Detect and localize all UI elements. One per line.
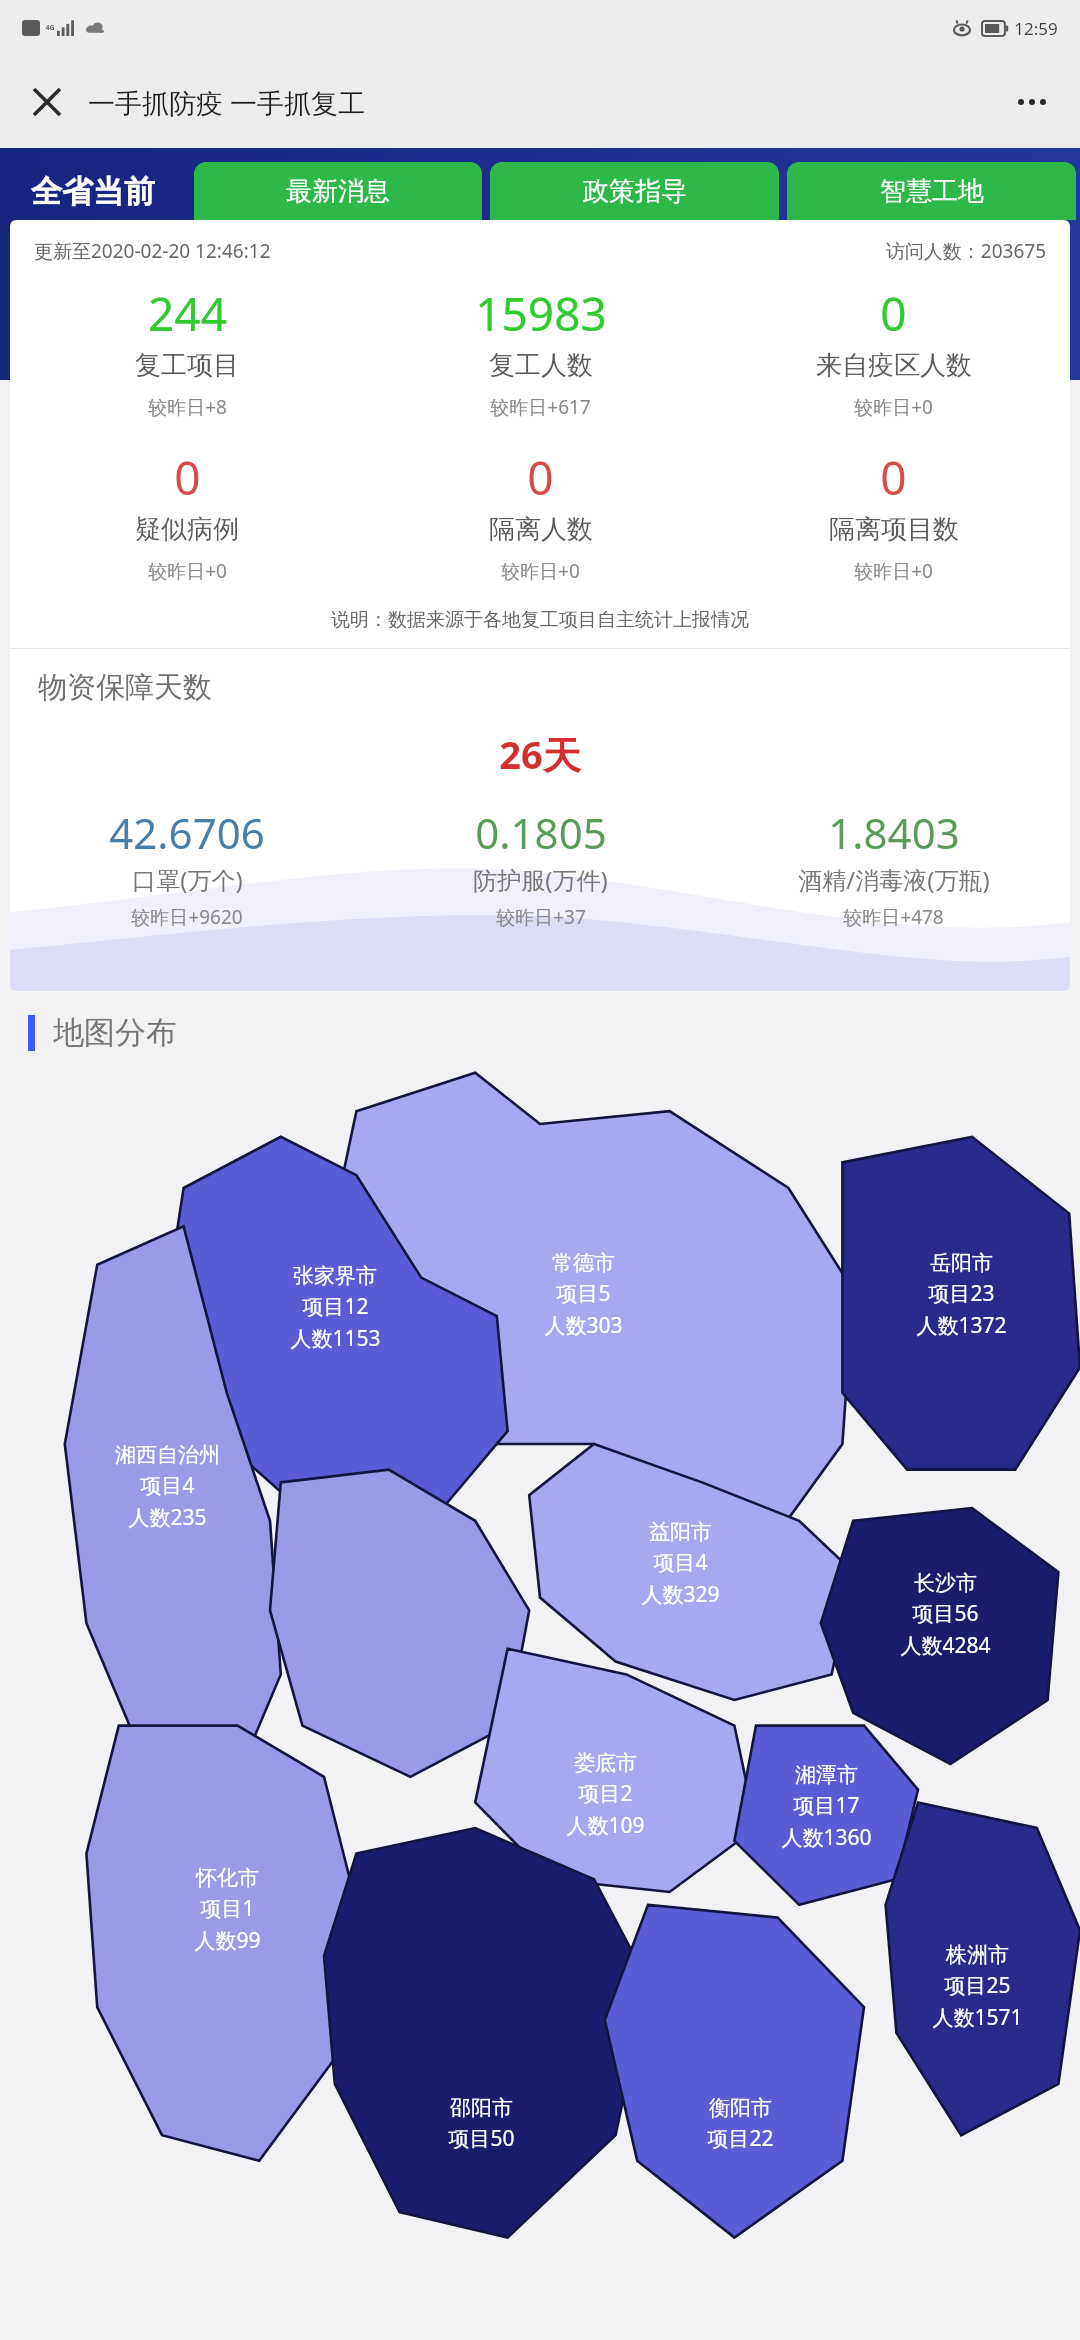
button[interactable]: 0 [717, 446, 1070, 584]
staticText: 说明：数据来源于各地复工项目自主统计上报情况 [10, 608, 1070, 632]
staticText: 人数4284 [900, 1631, 991, 1660]
staticText: 12:59 [1014, 17, 1058, 40]
staticText: 邵阳市 [450, 2095, 513, 2121]
button[interactable]: 15983 [364, 282, 717, 420]
staticText: 人数99 [194, 1926, 261, 1955]
staticText: 较昨日+0 [854, 394, 933, 420]
staticText: 项目50 [448, 2124, 515, 2153]
staticText: 较昨日+9620 [131, 904, 243, 930]
staticText: 隔离项目数 [829, 513, 959, 546]
staticText: 项目2 [578, 1779, 633, 1808]
staticText: 0 [880, 282, 907, 345]
staticText: 较昨日+37 [496, 904, 586, 930]
staticText: 项目4 [653, 1548, 708, 1577]
staticText: 较昨日+617 [490, 394, 591, 420]
staticText: 0 [527, 446, 554, 509]
staticText: 复工项目 [135, 349, 239, 382]
staticText: 酒精/消毒液(万瓶) [798, 863, 990, 896]
staticText: 岳阳市 [930, 1250, 993, 1276]
staticText: 4G [45, 23, 55, 33]
staticText: 项目23 [928, 1279, 995, 1308]
staticText: 项目1 [200, 1894, 255, 1923]
staticText: 人数1360 [781, 1823, 872, 1852]
staticText: 0 [880, 446, 907, 509]
staticText: 智慧工地 [880, 175, 984, 208]
button[interactable]: 0 [717, 282, 1070, 420]
staticText: 人数303 [544, 1311, 623, 1340]
staticText: 项目56 [912, 1599, 979, 1628]
staticText: 42.6706 [109, 804, 265, 861]
staticText: 访问人数：203675 [885, 238, 1046, 264]
staticText: 防护服(万件) [473, 863, 608, 896]
staticText: 项目25 [944, 1971, 1011, 2000]
staticText: 物资保障天数 [38, 669, 1070, 706]
staticText: 来自疫区人数 [816, 349, 972, 382]
staticText: 较昨日+0 [501, 558, 580, 584]
button[interactable]: 全省当前 [0, 162, 186, 220]
staticText: 怀化市 [196, 1865, 259, 1891]
staticText: 人数1571 [932, 2003, 1023, 2032]
staticText: 较昨日+0 [854, 558, 933, 584]
staticText: 地图分布 [53, 1013, 177, 1052]
button[interactable]: 244 [10, 282, 364, 420]
button[interactable]: 0 [10, 446, 364, 584]
staticText: 张家界市 [293, 1263, 377, 1289]
staticText: 娄底市 [574, 1750, 637, 1776]
staticText: 项目17 [793, 1791, 860, 1820]
staticText: 衡阳市 [709, 2095, 772, 2121]
staticText: 全省当前 [31, 172, 155, 211]
staticText: 疑似病例 [135, 513, 239, 546]
staticText: 一手抓防疫 一手抓复工 [88, 84, 366, 121]
staticText: 项目12 [302, 1292, 369, 1321]
staticText: 长沙市 [914, 1570, 977, 1596]
button[interactable]: 智慧工地 [787, 162, 1076, 220]
staticText: 244 [148, 282, 227, 345]
staticText: 较昨日+0 [148, 558, 227, 584]
staticText: 人数1372 [916, 1311, 1007, 1340]
button[interactable]: 政策指导 [490, 162, 779, 220]
staticText: 人数1153 [290, 1324, 381, 1353]
staticText: 项目4 [140, 1471, 195, 1500]
staticText: 人数329 [641, 1580, 720, 1609]
staticText: 最新消息 [286, 175, 390, 208]
staticText: 项目22 [707, 2124, 774, 2153]
staticText: 政策指导 [583, 175, 687, 208]
button[interactable]: More options [1004, 74, 1060, 130]
staticText: 0 [174, 446, 201, 509]
staticText: 口罩(万个) [132, 863, 243, 896]
staticText: 1.8403 [828, 804, 960, 861]
button[interactable]: Close [20, 75, 74, 129]
staticText: 湘西自治州 [115, 1442, 220, 1468]
button[interactable]: 0 [364, 446, 717, 584]
staticText: 湘潭市 [795, 1762, 858, 1788]
staticText: 更新至2020-02-20 12:46:12 [34, 238, 271, 264]
staticText: 常德市 [552, 1250, 615, 1276]
staticText: 26天 [10, 728, 1070, 780]
staticText: 项目5 [556, 1279, 611, 1308]
staticText: 0.1805 [475, 804, 607, 861]
staticText: 复工人数 [489, 349, 593, 382]
staticText: 15983 [475, 282, 607, 345]
staticText: 益阳市 [649, 1519, 712, 1545]
staticText: 株洲市 [946, 1942, 1009, 1968]
staticText: 人数235 [128, 1503, 207, 1532]
staticText: 隔离人数 [489, 513, 593, 546]
staticText: 较昨日+478 [843, 904, 944, 930]
staticText: 人数109 [566, 1811, 645, 1840]
staticText: 较昨日+8 [148, 394, 227, 420]
button[interactable]: 最新消息 [194, 162, 482, 220]
